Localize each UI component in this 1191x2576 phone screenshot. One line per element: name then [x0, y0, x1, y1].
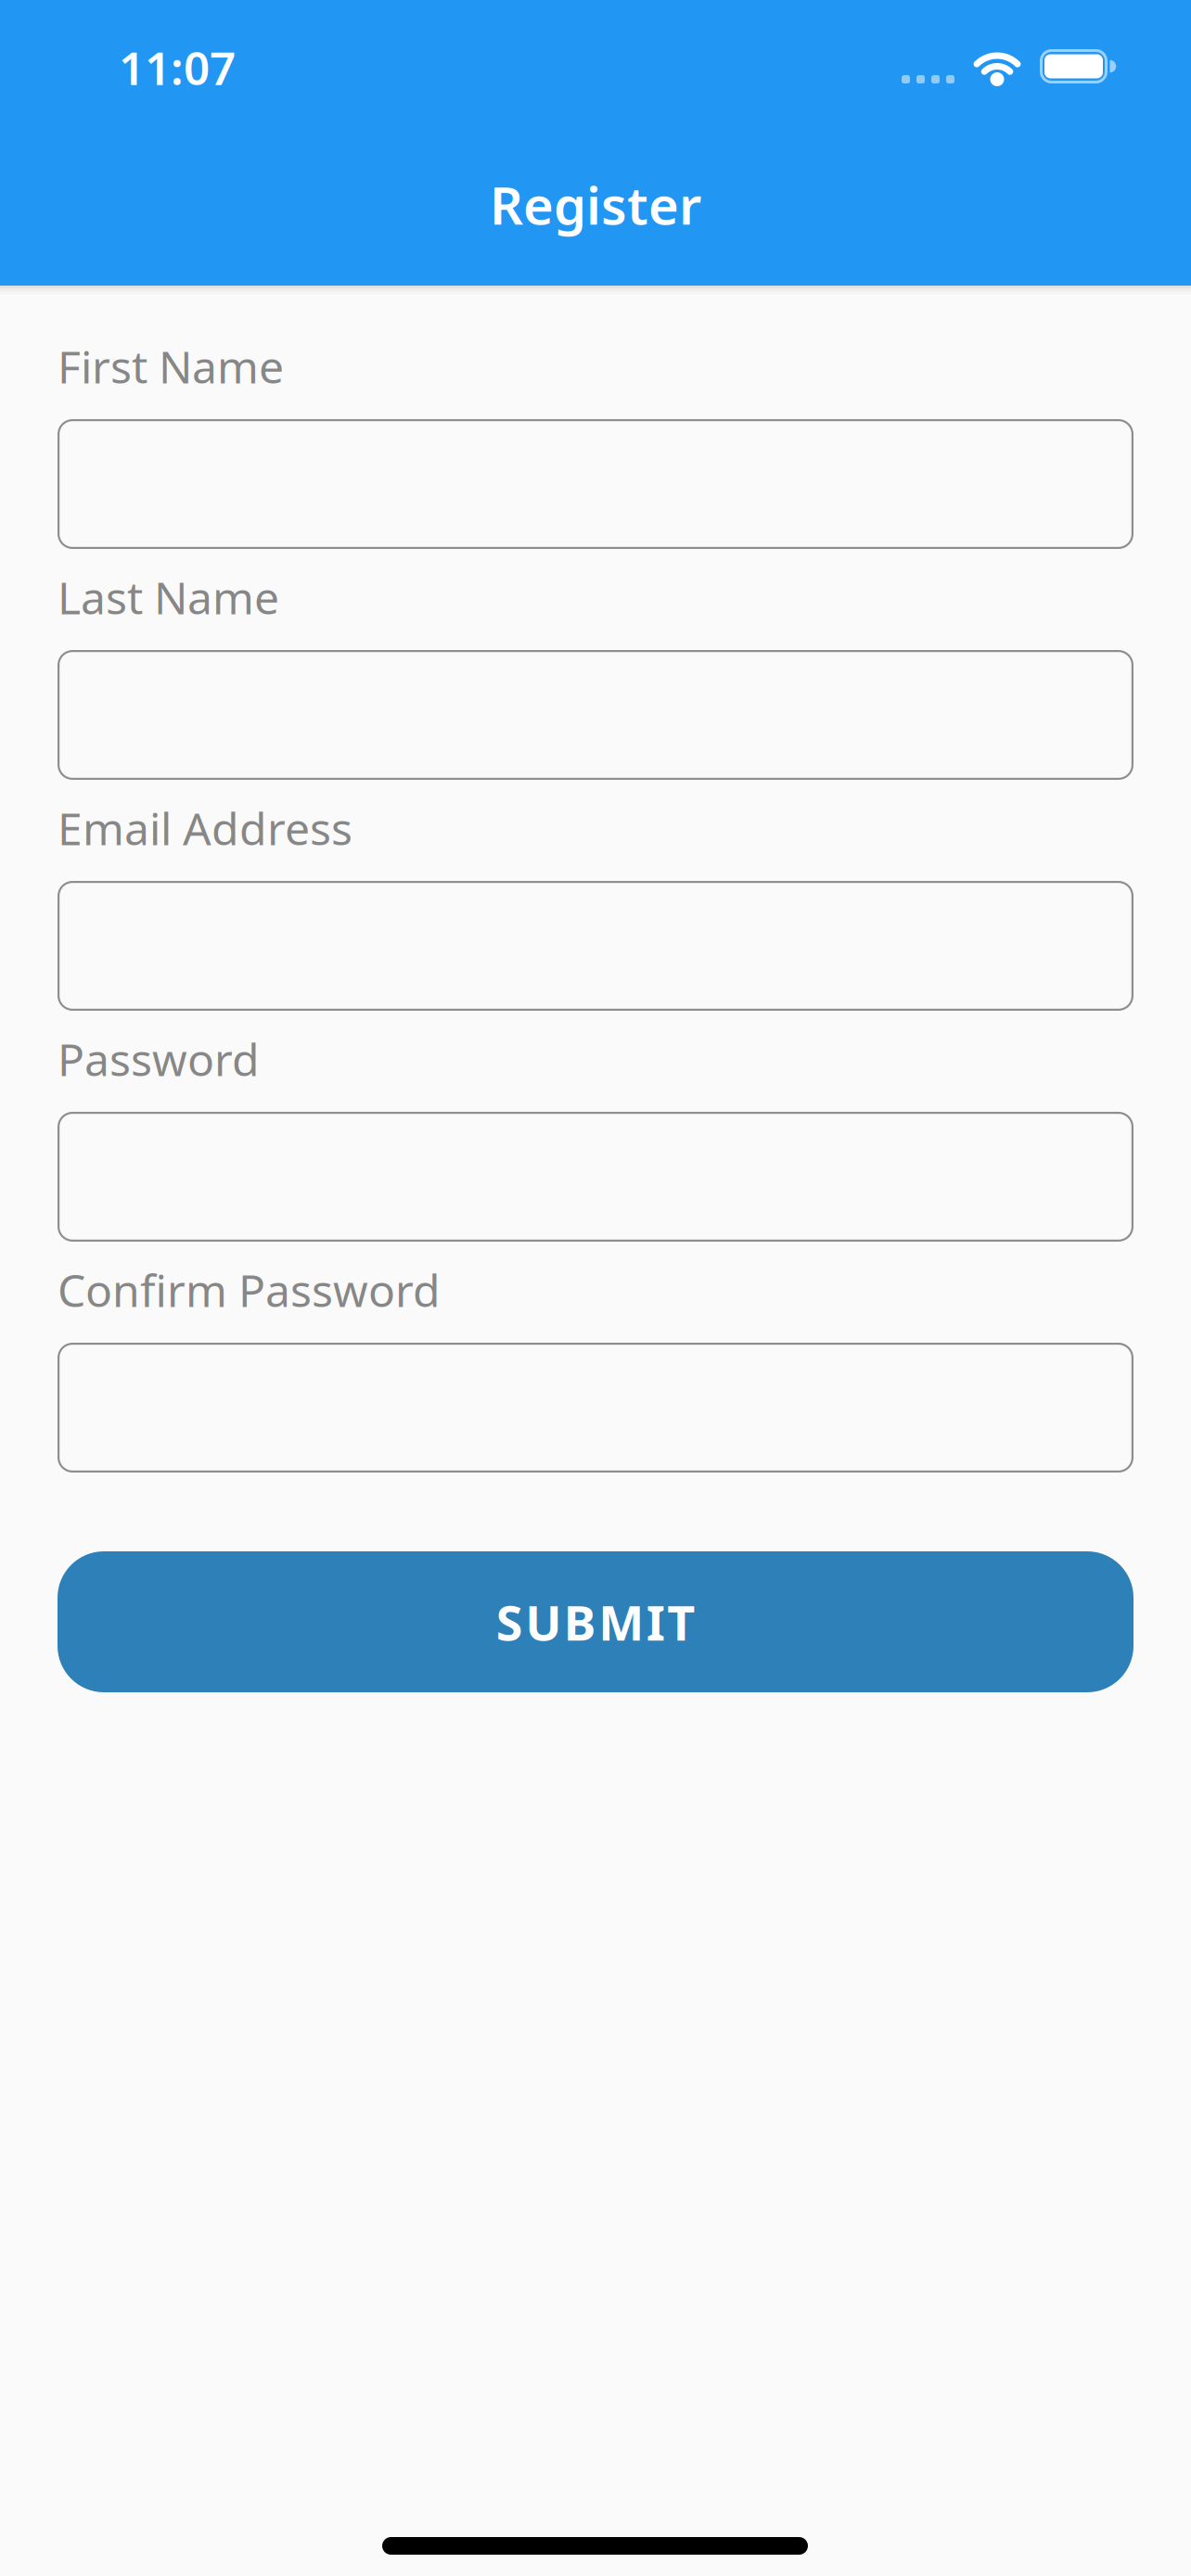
staticText: Email Address	[58, 798, 352, 857]
staticText: SUBMIT	[496, 1590, 695, 1654]
staticText: First Name	[58, 337, 284, 396]
staticText: Register	[490, 170, 701, 239]
staticText: Password	[58, 1029, 260, 1088]
staticText: 11:07	[119, 37, 236, 98]
staticText: Last Name	[58, 567, 279, 627]
staticText: Confirm Password	[58, 1260, 441, 1319]
button[interactable]: SUBMIT	[58, 1551, 1133, 1692]
